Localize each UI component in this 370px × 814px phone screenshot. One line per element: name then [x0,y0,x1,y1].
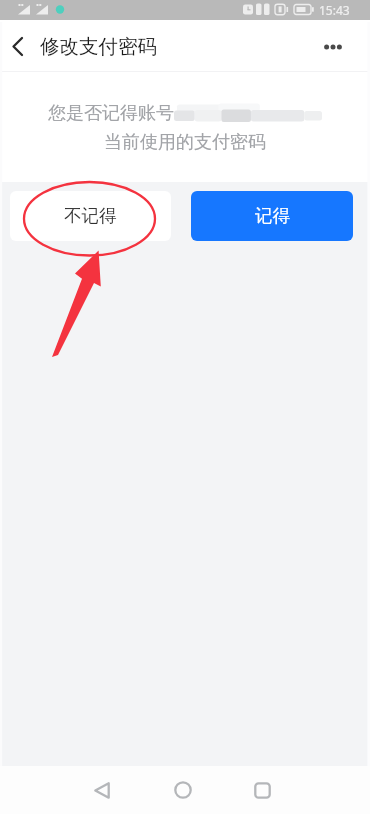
button[interactable]: Recent apps [222,766,302,814]
button[interactable]: Home [143,766,223,814]
button[interactable]: 不记得 [10,191,171,241]
button[interactable]: Back [62,766,142,814]
button[interactable]: Back [0,20,35,72]
staticText: 记得 [255,205,290,227]
staticText: 15:43 [319,2,350,18]
staticText: 不记得 [64,205,117,227]
staticText: 当前使用的支付密码 [104,131,266,154]
staticText: 修改支付密码 [40,34,157,59]
button[interactable]: 记得 [191,191,353,241]
button[interactable]: More options [322,20,370,72]
staticText: 您是否记得账号 [48,102,174,125]
